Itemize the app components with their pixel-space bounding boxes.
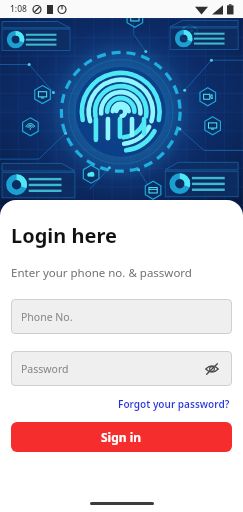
button[interactable]: Show password [202, 359, 222, 379]
staticText: Login here [11, 222, 117, 249]
button[interactable]: Forgot your password? [116, 395, 232, 413]
button[interactable]: Phone No. [11, 299, 232, 334]
button[interactable]: Password [11, 351, 232, 386]
button[interactable]: Sign in [11, 422, 232, 452]
staticText: Enter your phone no. & password [11, 265, 192, 281]
staticText: Password [21, 362, 69, 376]
staticText: Phone No. [21, 310, 73, 324]
staticText: Sign in [101, 429, 142, 445]
staticText: Forgot your password? [118, 397, 230, 411]
staticText: 1:08 [10, 3, 27, 15]
